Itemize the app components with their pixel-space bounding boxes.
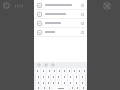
button[interactable]: Key [42, 86, 46, 90]
button[interactable] [34, 1, 87, 10]
button[interactable]: Key [62, 80, 67, 86]
button[interactable]: Key [62, 74, 67, 80]
button[interactable]: Key [51, 80, 55, 86]
button[interactable]: Key [62, 68, 66, 74]
button[interactable]: Key [47, 68, 51, 74]
button[interactable]: Key [56, 74, 61, 80]
button[interactable]: Key [35, 68, 40, 74]
button[interactable]: Key [82, 68, 86, 74]
button[interactable]: Key [68, 80, 73, 86]
button[interactable] [34, 19, 87, 28]
button[interactable] [34, 10, 87, 19]
button[interactable]: Key [77, 68, 81, 74]
button[interactable]: Key [51, 74, 55, 80]
button[interactable]: Key [41, 68, 46, 74]
button[interactable]: Space [52, 86, 69, 90]
button[interactable]: Keyboard tool [37, 63, 41, 67]
button[interactable]: Key [80, 80, 85, 86]
button[interactable]: Key [68, 74, 73, 80]
button[interactable]: Key [56, 80, 61, 86]
button[interactable]: Keyboard tool [44, 63, 48, 67]
button[interactable]: Key [70, 86, 74, 90]
button[interactable]: Keyboard tool [51, 63, 55, 67]
button[interactable]: Key [57, 68, 61, 74]
other: Recording indicator [3, 2, 24, 9]
button[interactable]: Key [36, 80, 40, 86]
button[interactable]: Key [80, 74, 85, 80]
button[interactable]: Key [46, 80, 50, 86]
button[interactable]: Key [72, 68, 76, 74]
button[interactable]: Key [74, 80, 79, 86]
button[interactable]: Key [80, 86, 86, 90]
button[interactable] [34, 28, 87, 37]
button[interactable]: Key [36, 74, 40, 80]
button[interactable]: Key [75, 86, 79, 90]
button[interactable]: Stop [103, 2, 111, 10]
button[interactable]: Key [46, 74, 50, 80]
button[interactable]: Key [41, 80, 45, 86]
button[interactable]: Key [74, 74, 79, 80]
button[interactable]: Key [41, 74, 45, 80]
button[interactable]: Key [35, 86, 41, 90]
button[interactable]: Key [47, 86, 51, 90]
button[interactable]: Key [67, 68, 71, 74]
button[interactable]: Key [52, 68, 56, 74]
